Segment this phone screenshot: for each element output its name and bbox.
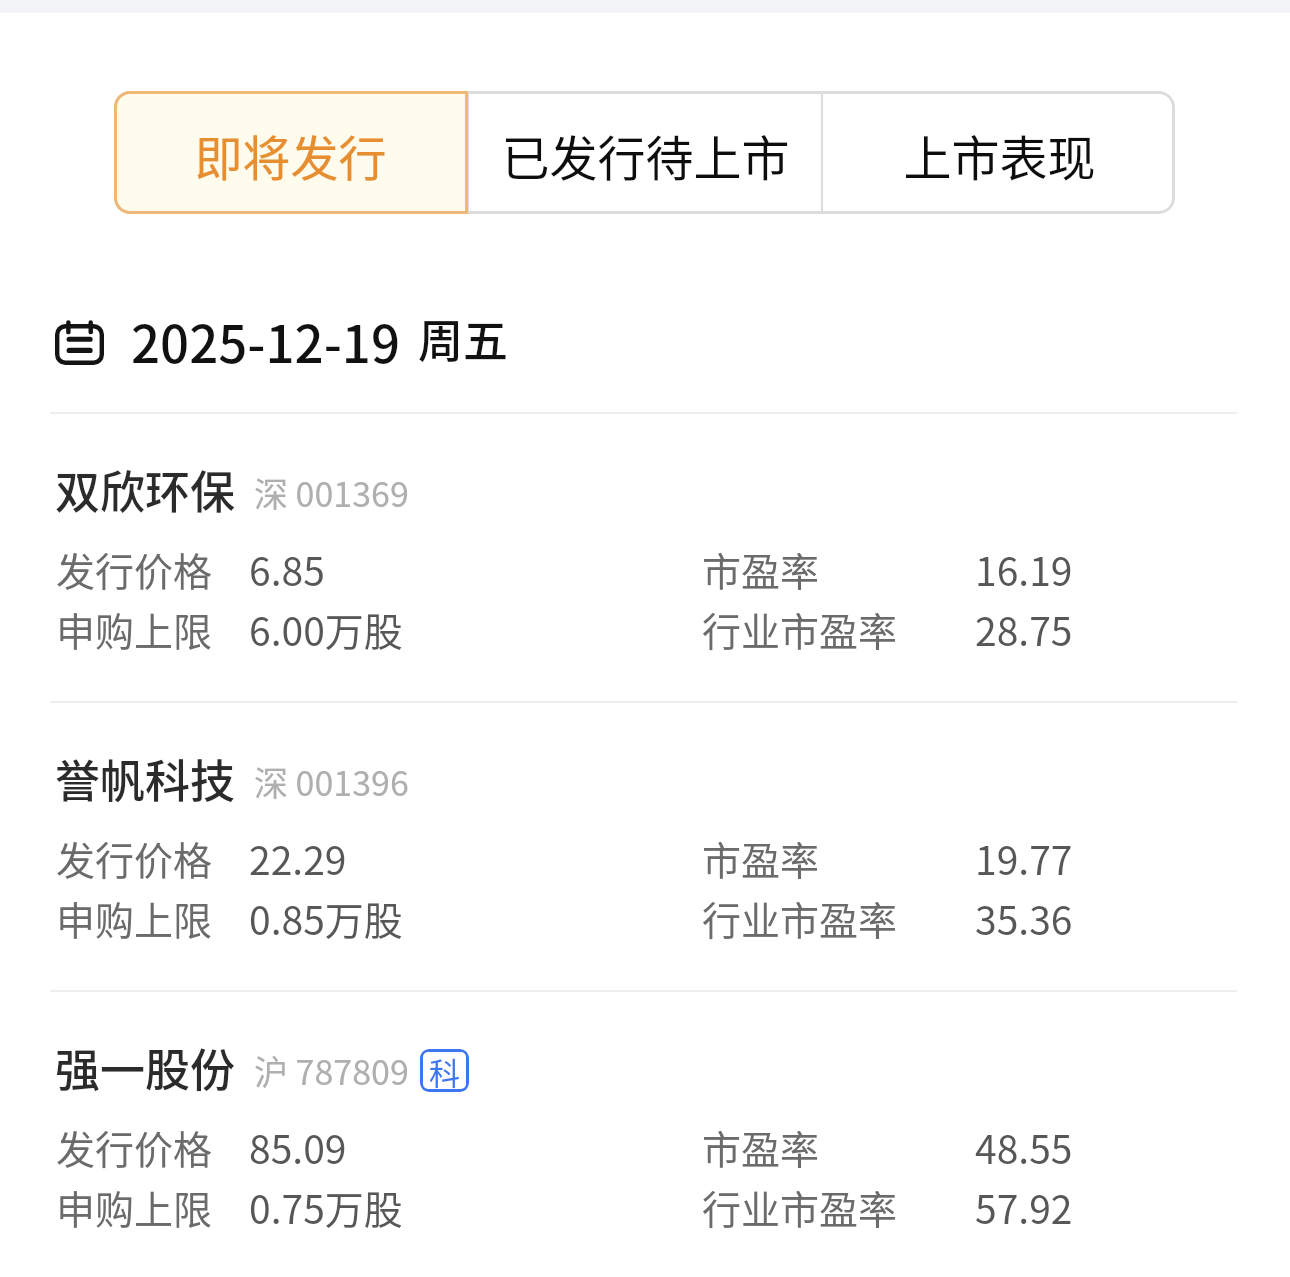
- staticText: 发行价格: [56, 541, 213, 597]
- staticText: 发行价格: [56, 1119, 213, 1175]
- button[interactable]: 即将发行: [114, 91, 467, 214]
- staticText: 即将发行: [194, 120, 387, 190]
- staticText: 16.19: [975, 541, 1073, 597]
- button[interactable]: 上市表现: [823, 91, 1175, 214]
- staticText: 强一股份: [55, 1035, 236, 1100]
- staticText: 85.09: [249, 1119, 347, 1175]
- staticText: 誉帆科技: [55, 746, 236, 811]
- button[interactable]: 双欣环保: [0, 411, 1290, 700]
- staticText: 双欣环保: [55, 457, 236, 522]
- staticText: 科: [429, 1049, 460, 1092]
- staticText: 6.00万股: [249, 601, 403, 657]
- staticText: 上市表现: [903, 120, 1096, 190]
- staticText: 2025-12-19: [131, 304, 400, 378]
- staticText: 22.29: [249, 830, 347, 886]
- staticText: 申购上限: [56, 890, 213, 946]
- staticText: 35.36: [975, 890, 1073, 946]
- staticText: 申购上限: [56, 1179, 213, 1235]
- button[interactable]: 誉帆科技: [0, 700, 1290, 989]
- staticText: 深 001396: [254, 757, 409, 806]
- staticText: 市盈率: [702, 541, 820, 597]
- staticText: 市盈率: [702, 1119, 820, 1175]
- staticText: 行业市盈率: [702, 1179, 898, 1235]
- staticText: 48.55: [975, 1119, 1073, 1175]
- staticText: 发行价格: [56, 830, 213, 886]
- staticText: 57.92: [975, 1179, 1073, 1235]
- staticText: 28.75: [975, 601, 1073, 657]
- staticText: 深 001369: [254, 468, 409, 517]
- staticText: 已发行待上市: [501, 120, 790, 190]
- button[interactable]: 已发行待上市: [469, 91, 821, 214]
- other: Calendar: [55, 320, 104, 365]
- staticText: 0.85万股: [249, 890, 403, 946]
- staticText: 行业市盈率: [702, 890, 898, 946]
- staticText: 沪 787809: [254, 1046, 409, 1095]
- staticText: 19.77: [975, 830, 1073, 886]
- button[interactable]: 强一股份: [0, 989, 1290, 1277]
- staticText: 市盈率: [702, 830, 820, 886]
- staticText: 申购上限: [56, 601, 213, 657]
- staticText: 0.75万股: [249, 1179, 403, 1235]
- staticText: 行业市盈率: [702, 601, 898, 657]
- staticText: 6.85: [249, 541, 325, 597]
- staticText: 周五: [418, 306, 509, 371]
